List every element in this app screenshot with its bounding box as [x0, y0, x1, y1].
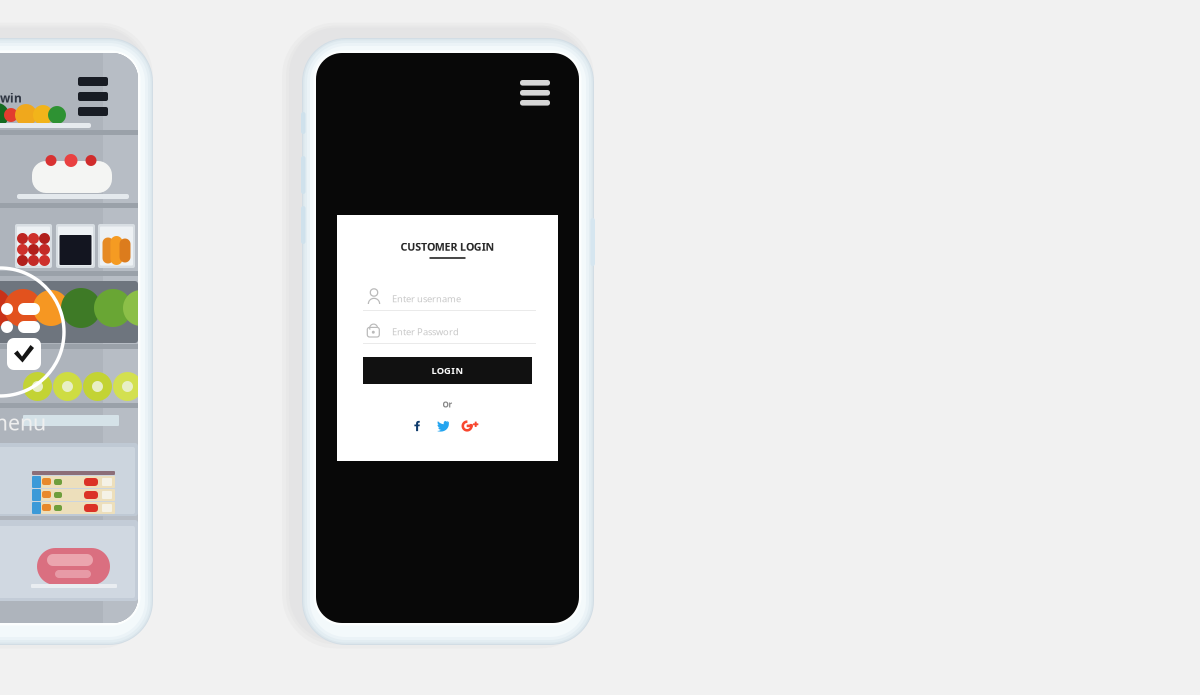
button[interactable]: Enter Password — [363, 321, 536, 348]
staticText: menu — [0, 408, 46, 436]
staticText: CUSTOMER LOGIN — [400, 239, 494, 254]
staticText: Enter username — [392, 292, 461, 305]
button[interactable]: Sign in with Google Plus — [458, 414, 482, 438]
button[interactable]: LOGIN — [363, 357, 532, 384]
button[interactable]: Sign in with Facebook — [405, 414, 429, 438]
button[interactable]: Menu — [520, 80, 550, 106]
staticText: Twin — [0, 90, 22, 106]
button[interactable]: Sign in with Twitter — [431, 414, 455, 438]
button[interactable]: Enter username — [363, 288, 536, 315]
staticText: LOGIN — [431, 364, 464, 377]
staticText: Or — [442, 399, 452, 410]
staticText: Enter Password — [392, 325, 459, 338]
